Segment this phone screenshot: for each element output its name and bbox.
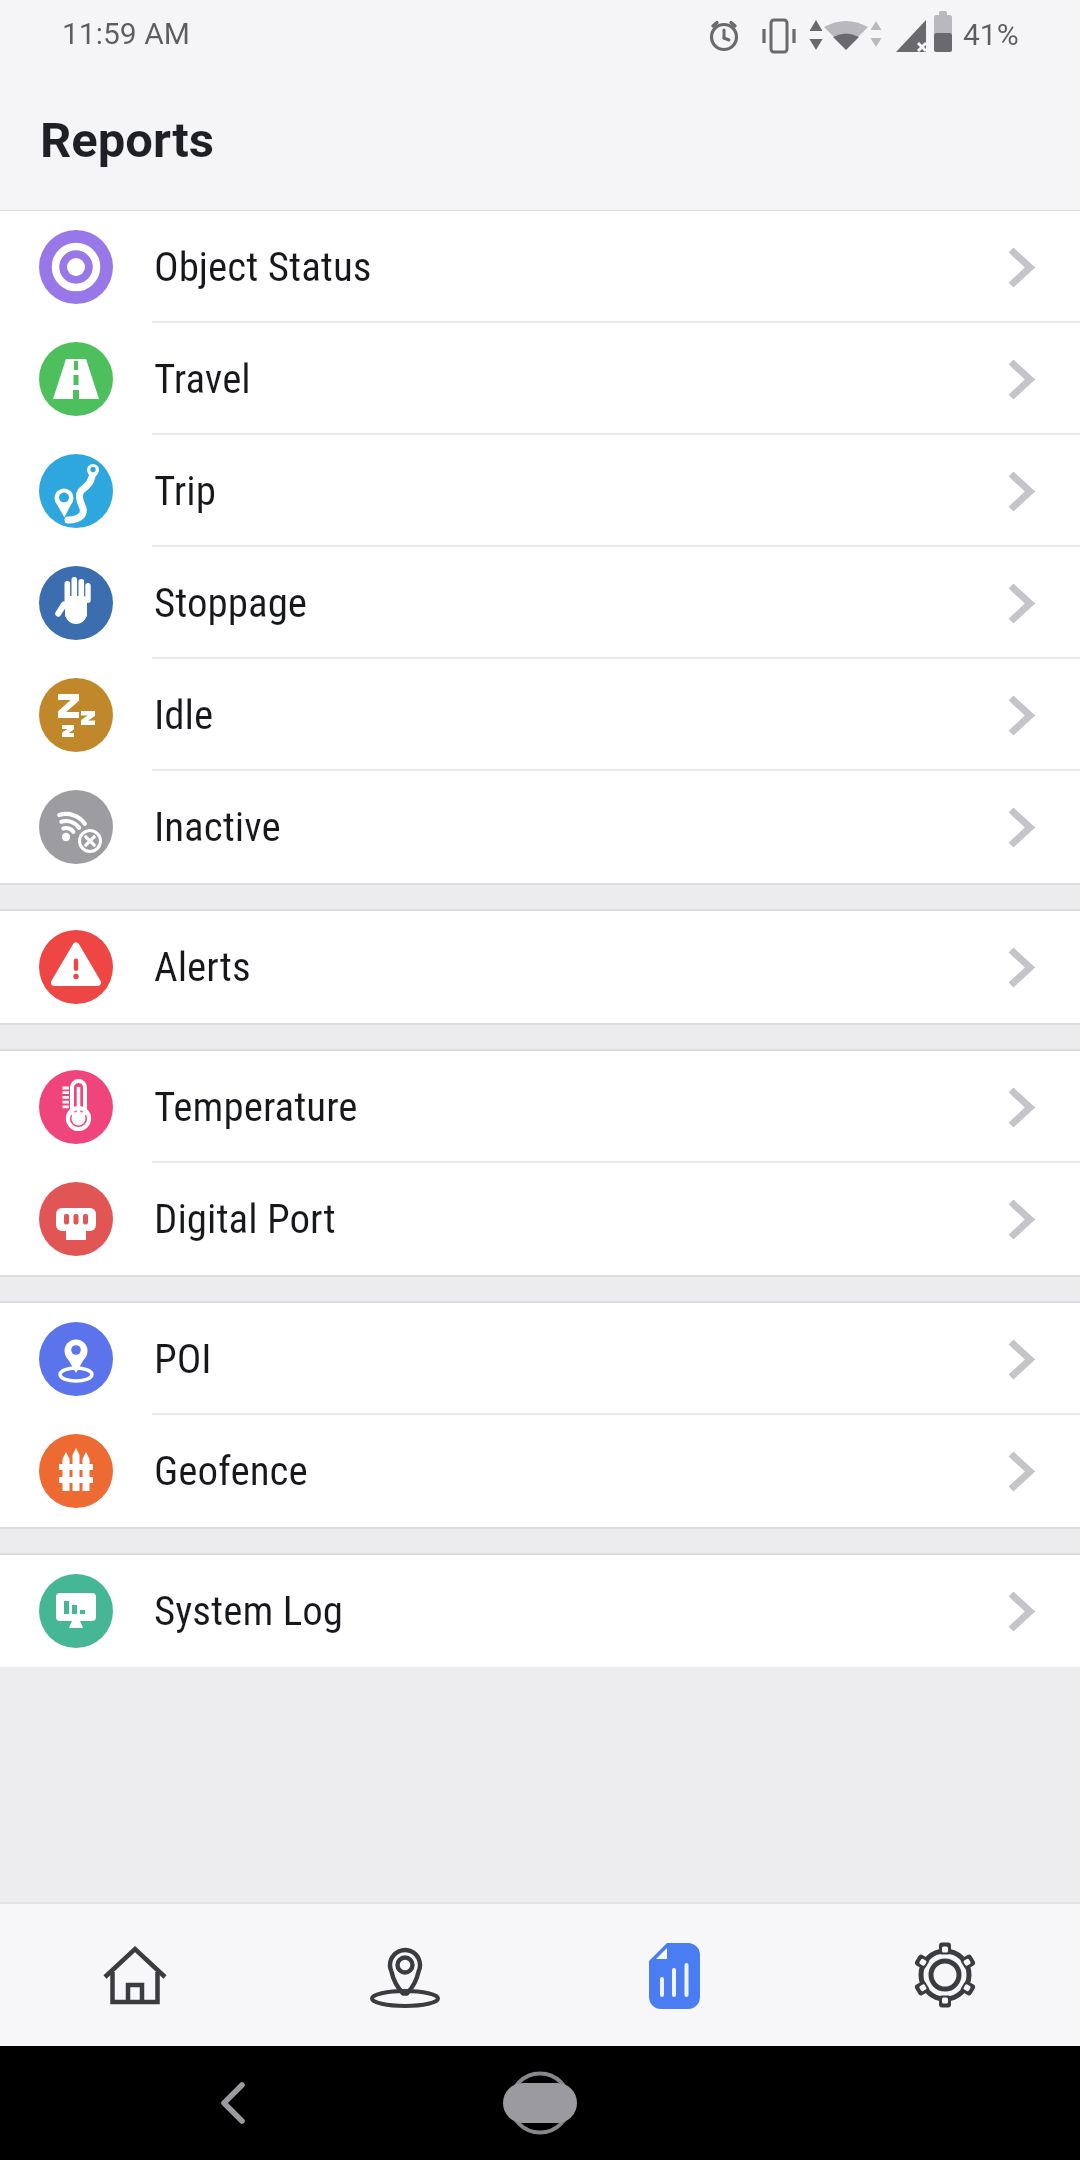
staticText: 41% [963,17,1019,52]
button[interactable] [203,2048,263,2158]
staticText: Travel [154,355,251,403]
staticText: Temperature [154,1083,358,1131]
button[interactable]: Alerts [0,911,1080,1023]
button[interactable] [810,1904,1080,2046]
button[interactable]: Idle [0,659,1080,771]
button[interactable]: System Log [0,1555,1080,1667]
staticText: Idle [154,691,214,739]
button[interactable]: Temperature [0,1051,1080,1163]
staticText: POI [154,1335,212,1383]
staticText: Trip [154,467,216,515]
button[interactable]: Digital Port [0,1163,1080,1275]
button[interactable] [540,1904,810,2046]
staticText: Alerts [154,943,251,991]
button[interactable]: Inactive [0,771,1080,883]
staticText: Inactive [154,803,281,851]
button[interactable] [495,2048,585,2158]
button[interactable]: POI [0,1303,1080,1415]
staticText: Object Status [154,243,372,291]
button[interactable]: Stoppage [0,547,1080,659]
staticText: 11:59 AM [62,16,190,51]
button[interactable]: Trip [0,435,1080,547]
button[interactable] [0,1904,270,2046]
staticText: Stoppage [154,579,308,627]
button[interactable]: Geofence [0,1415,1080,1527]
button[interactable]: Travel [0,323,1080,435]
button[interactable] [270,1904,540,2046]
staticText: Geofence [154,1447,308,1495]
staticText: Reports [40,112,214,169]
staticText: System Log [154,1587,343,1635]
button[interactable]: Object Status [0,211,1080,323]
staticText: Digital Port [154,1195,336,1243]
